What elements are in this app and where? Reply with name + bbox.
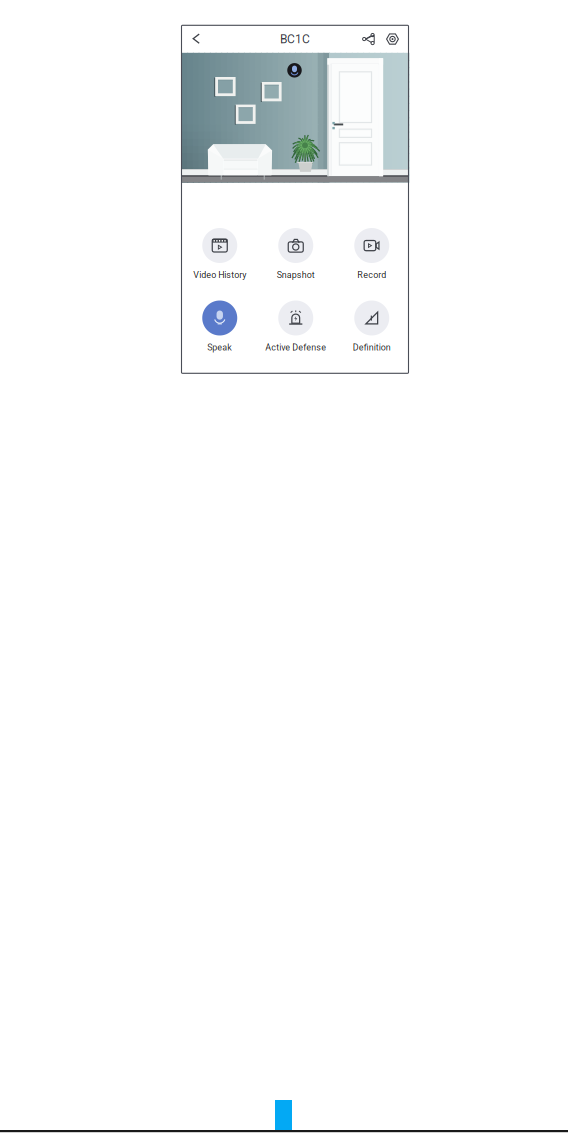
- button[interactable]: Active Defense: [258, 300, 334, 353]
- staticText: Speak: [207, 342, 232, 353]
- button[interactable]: Speak: [182, 300, 258, 353]
- button[interactable]: Snapshot: [258, 228, 334, 281]
- button[interactable]: Share: [357, 25, 379, 53]
- button[interactable]: Video History: [182, 228, 258, 281]
- staticText: Definition: [353, 342, 391, 353]
- staticText: Snapshot: [277, 270, 315, 280]
- button[interactable]: Definition: [334, 300, 410, 353]
- staticText: Record: [357, 270, 386, 280]
- button[interactable]: Settings: [381, 25, 403, 53]
- button[interactable]: Record: [334, 228, 410, 281]
- staticText: Active Defense: [265, 342, 326, 353]
- button[interactable]: Back: [184, 25, 208, 53]
- staticText: Video History: [193, 270, 246, 280]
- staticText: BC1C: [280, 32, 310, 46]
